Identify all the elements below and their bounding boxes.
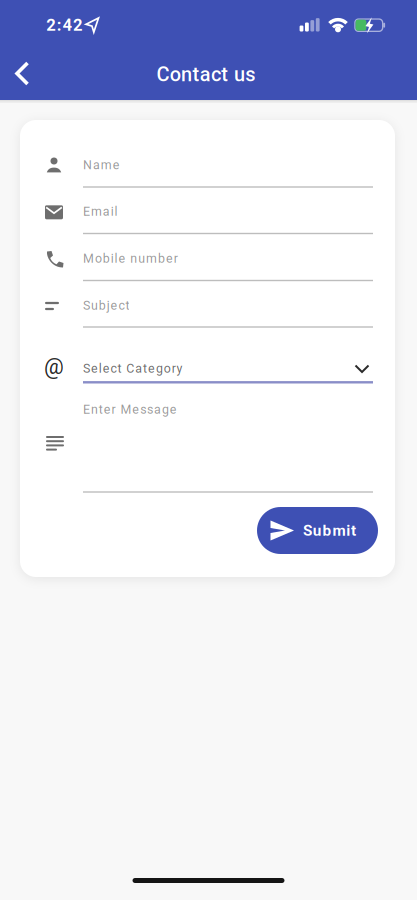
button[interactable]: Mobile number [34,238,383,278]
staticText: Mobile number [83,251,182,266]
staticText: Email [83,204,121,219]
button[interactable]: Subject [34,285,383,325]
button[interactable]: Name [34,145,383,185]
staticText: Submit [303,521,356,539]
staticText: Name [83,158,124,172]
button[interactable]: Back [0,55,44,91]
button[interactable]: Email [34,191,383,231]
button[interactable]: Select Category [34,352,383,390]
staticText: Select Category [83,361,186,376]
staticText: Subject [83,298,133,313]
staticText: 2:42 [46,15,83,35]
staticText: @ [44,354,64,379]
button[interactable]: Enter Message [34,395,383,500]
staticText: Contact us [156,63,260,86]
staticText: Enter Message [83,402,181,417]
button[interactable]: Submit [257,507,378,554]
